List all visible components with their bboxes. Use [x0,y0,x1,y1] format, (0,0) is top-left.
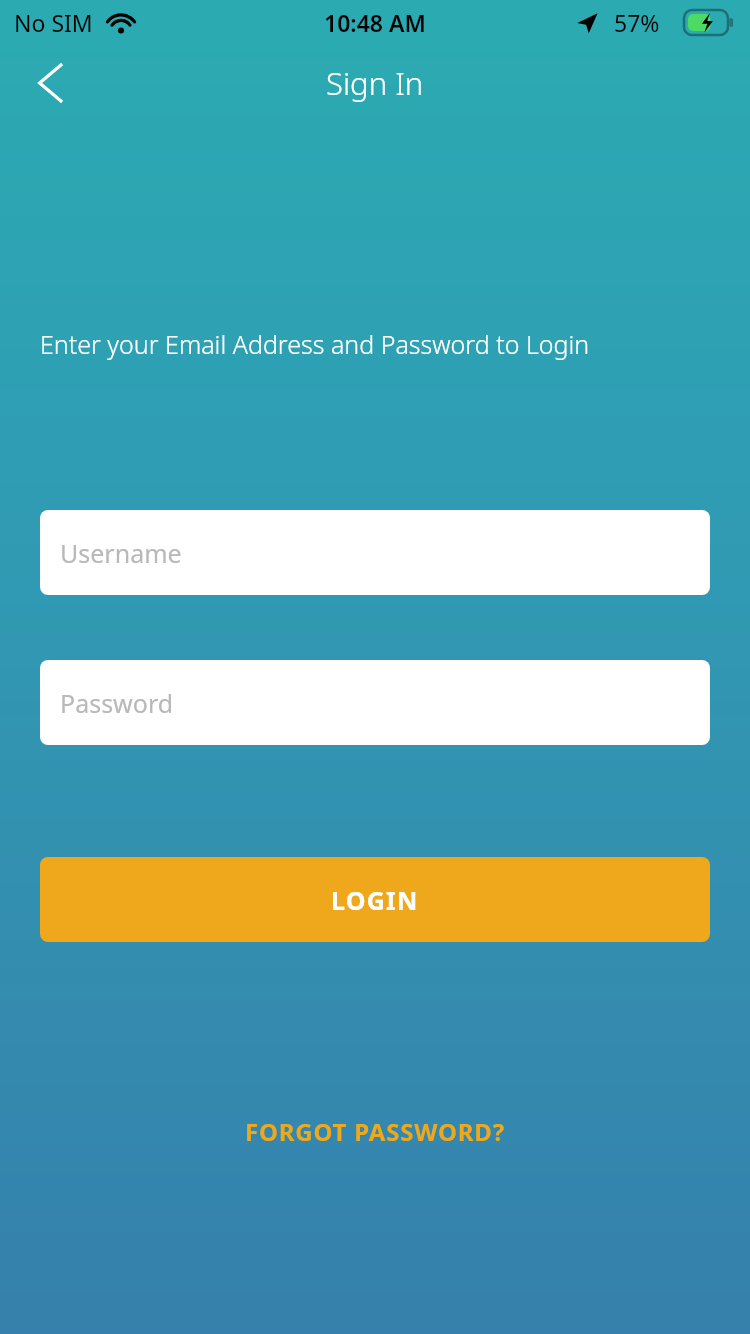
staticText: LOGIN [331,883,419,917]
button[interactable]: Password [40,660,710,745]
staticText: No SIM [14,7,93,38]
staticText: Sign In [326,62,424,104]
staticText: Username [60,536,182,570]
button[interactable]: LOGIN [40,857,710,942]
button[interactable]: Username [40,510,710,595]
staticText: Enter your Email Address and Password to… [40,327,590,361]
button[interactable]: FORGOT PASSWORD? [0,1108,750,1154]
staticText: FORGOT PASSWORD? [245,1115,505,1148]
staticText: Password [60,686,174,720]
button[interactable]: Back [22,55,78,111]
staticText: 10:48 AM [324,7,426,38]
staticText: 57% [614,7,660,38]
